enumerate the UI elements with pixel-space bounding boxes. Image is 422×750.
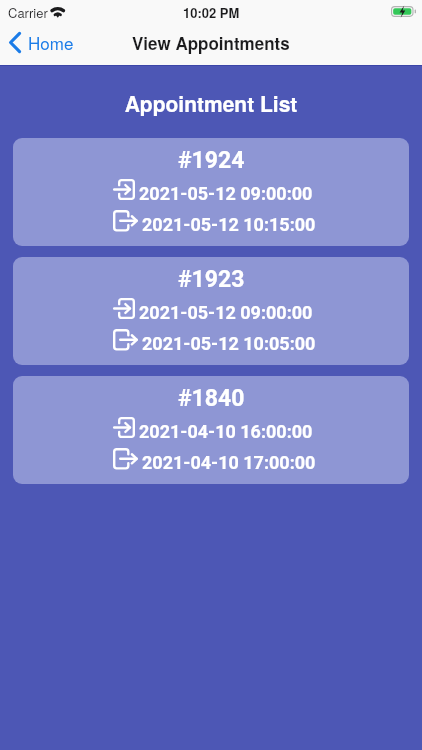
staticText: 2021-05-12 09:00:00	[139, 183, 313, 204]
staticText: #1840	[178, 385, 245, 412]
other: Check out time	[113, 329, 138, 350]
staticText: 2021-04-10 17:00:00	[142, 452, 316, 473]
other: Check out time	[113, 210, 138, 231]
other: Check in time	[113, 179, 135, 200]
staticText: 2021-05-12 10:05:00	[142, 333, 316, 354]
staticText: Carrier	[8, 3, 48, 22]
staticText: #1924	[178, 147, 245, 174]
staticText: 2021-04-10 16:00:00	[139, 421, 313, 442]
button[interactable]: Home	[2, 24, 84, 60]
staticText: View Appointments	[132, 31, 290, 55]
button[interactable]: #1840	[13, 376, 409, 484]
staticText: 10:02 PM	[183, 3, 240, 22]
other: Check in time	[113, 298, 135, 319]
staticText: 2021-05-12 09:00:00	[139, 302, 313, 323]
staticText: Home	[28, 30, 74, 54]
other: Check out time	[113, 448, 138, 469]
staticText: 2021-05-12 10:15:00	[142, 214, 316, 235]
staticText: #1923	[178, 266, 245, 293]
other: Check in time	[113, 417, 135, 438]
staticText: Appointment List	[0, 88, 422, 118]
button[interactable]: #1923	[13, 257, 409, 365]
button[interactable]: #1924	[13, 138, 409, 246]
